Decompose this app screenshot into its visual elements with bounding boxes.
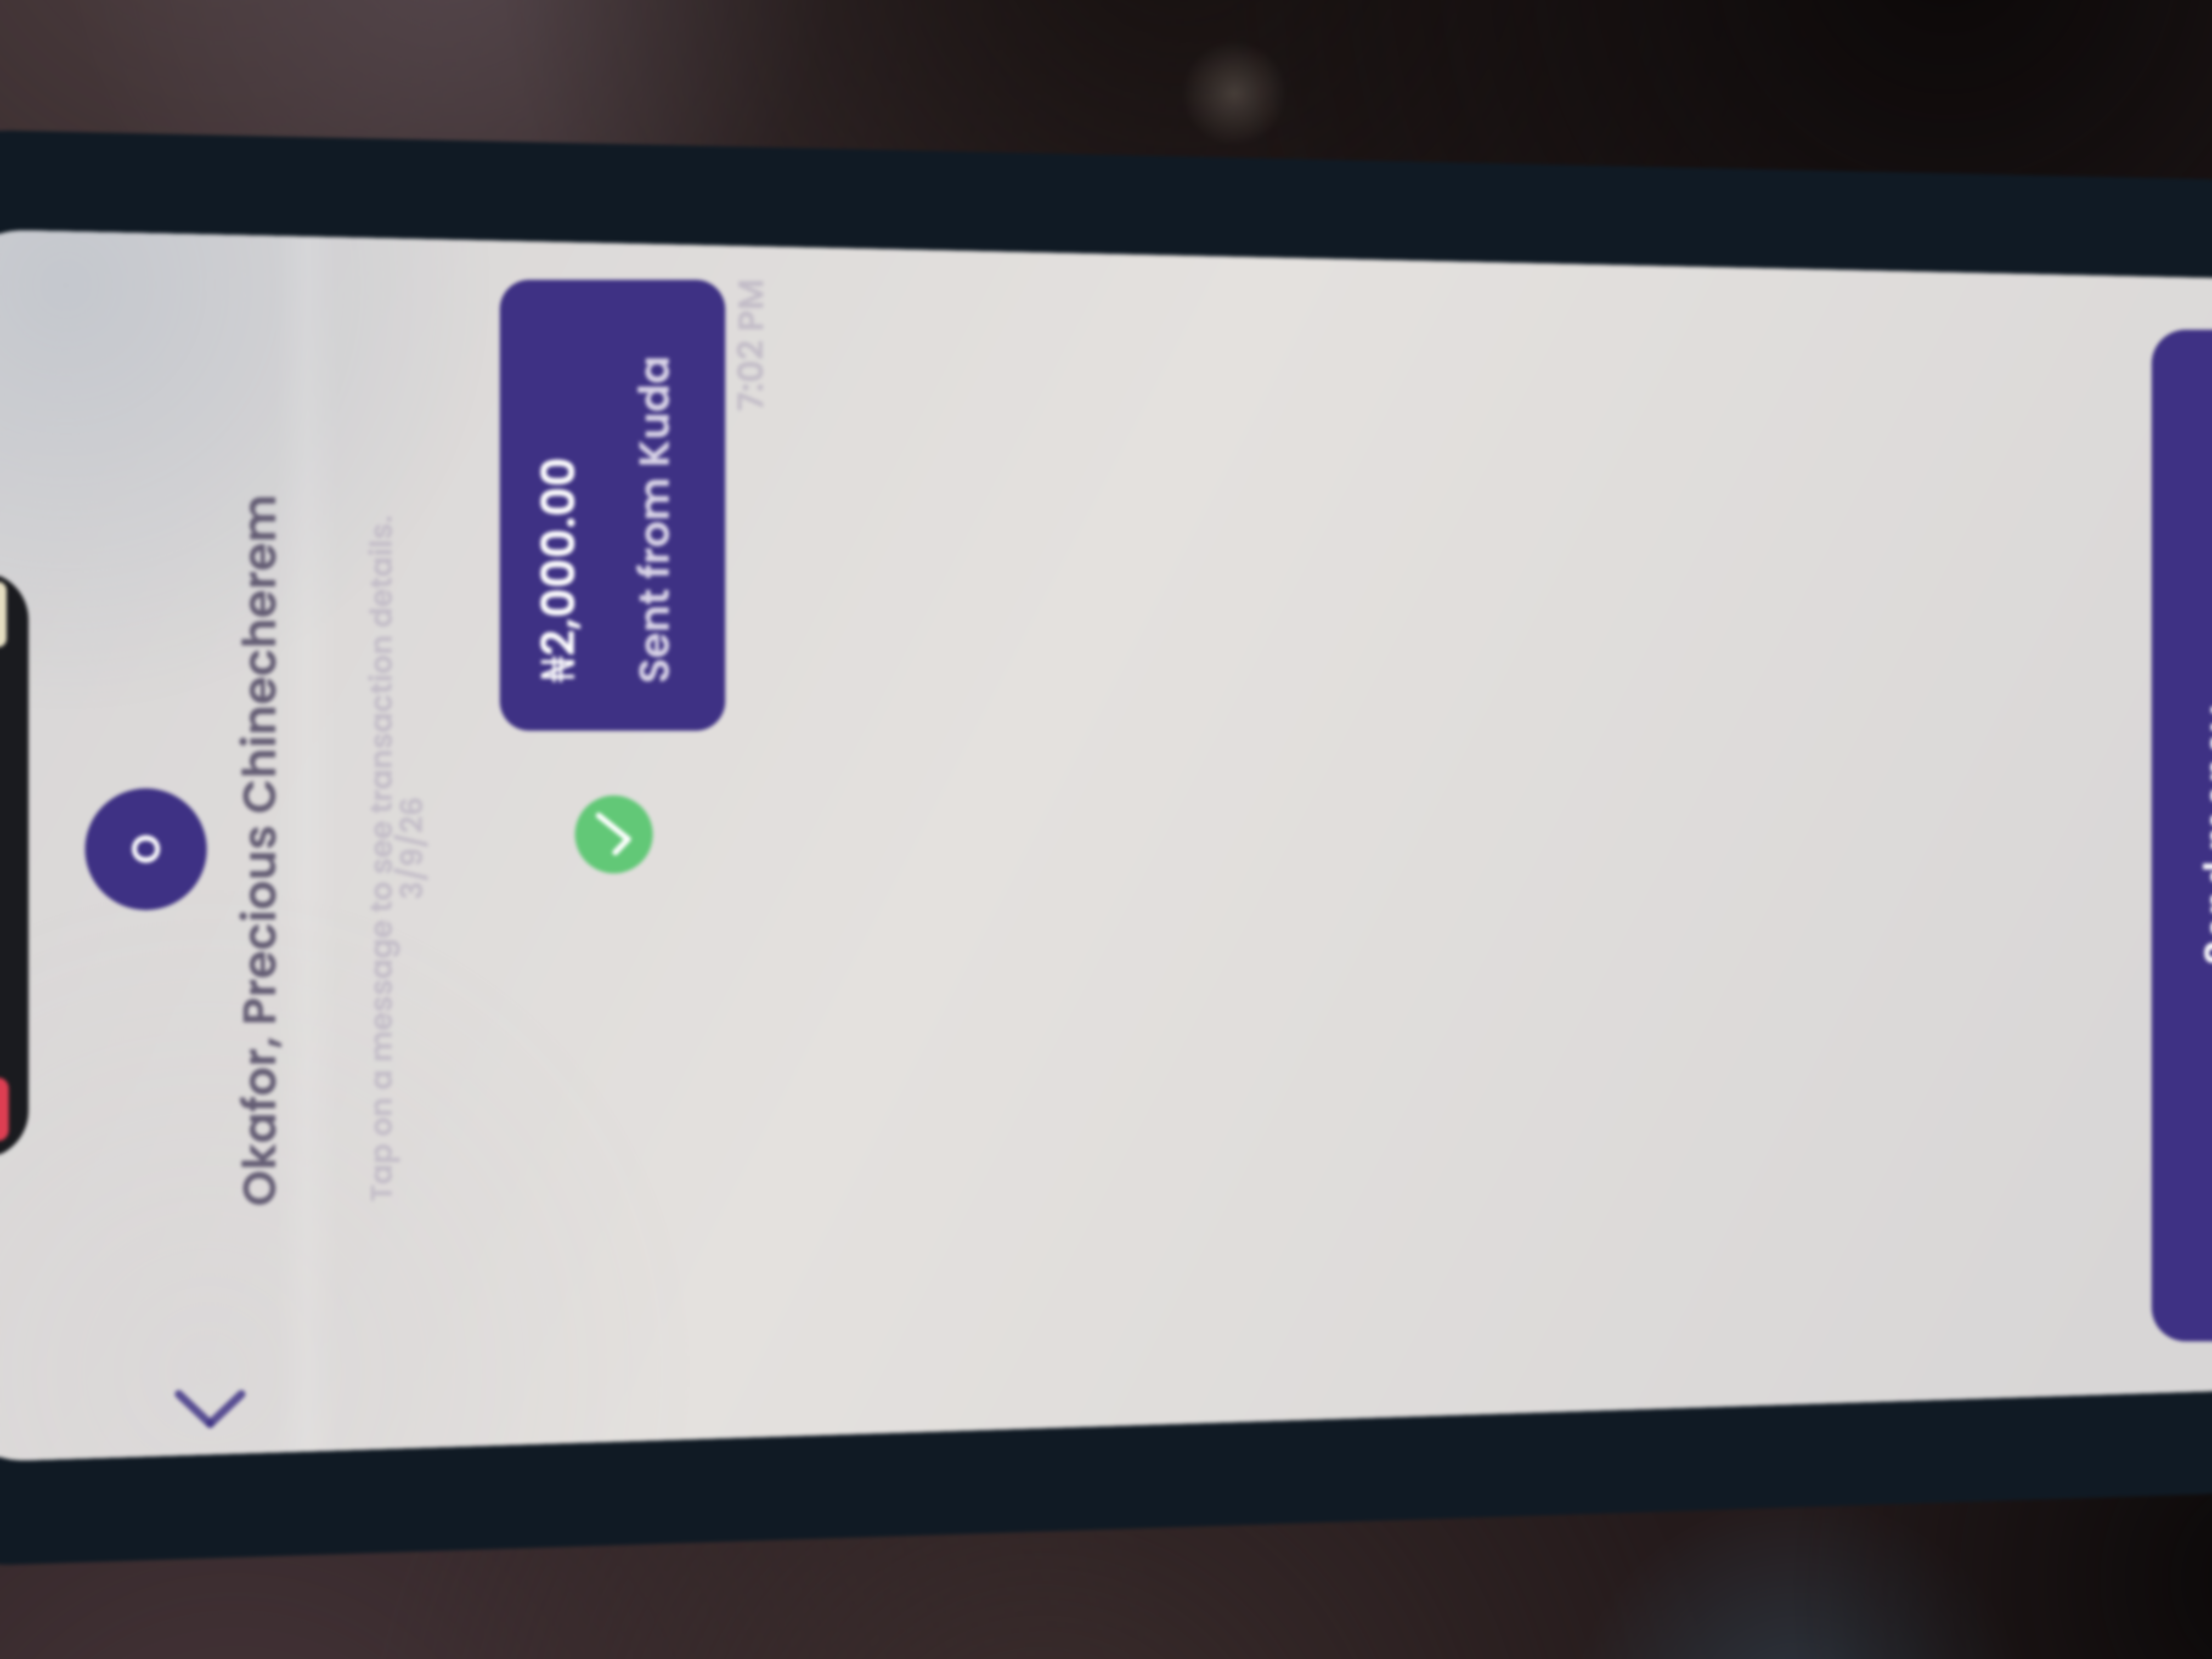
staticText: Okafor, Precious Chinecherem bbox=[227, 250, 292, 1451]
staticText: Sent from Kuda bbox=[625, 356, 683, 684]
button[interactable]: Contact avatar bbox=[85, 788, 207, 910]
button[interactable]: ₦2,000.00 bbox=[500, 280, 725, 731]
staticText: ₦2,000.00 bbox=[525, 457, 590, 682]
staticText: 7:02 PM bbox=[726, 279, 776, 1437]
button[interactable]: Back bbox=[148, 1363, 272, 1456]
other: Delivered bbox=[575, 795, 653, 873]
staticText: O bbox=[119, 834, 173, 864]
staticText: 3/9/26 bbox=[391, 247, 433, 1449]
staticText: Send money bbox=[2191, 706, 2212, 965]
button[interactable]: Send money bbox=[2152, 330, 2212, 1341]
staticText: Tap on a message to see transaction deta… bbox=[360, 258, 402, 1459]
